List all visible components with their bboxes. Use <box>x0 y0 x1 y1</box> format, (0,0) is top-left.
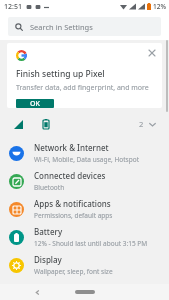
staticText: Battery <box>34 226 63 237</box>
button[interactable]: Battery <box>38 116 54 132</box>
button[interactable]: Home <box>70 286 100 298</box>
staticText: Bluetooth <box>34 183 65 192</box>
staticText: Display <box>34 254 62 265</box>
staticText: Finish setting up Pixel <box>16 68 105 80</box>
staticText: Transfer data, add fingerprint, and more <box>16 83 149 93</box>
staticText: OK <box>30 99 40 108</box>
button[interactable]: 2 <box>136 117 159 131</box>
staticText: Wi-Fi, Mobile, Data usage, Hotspot <box>34 155 140 164</box>
staticText: 12:51 <box>4 2 22 12</box>
staticText: 2 <box>139 119 144 129</box>
button[interactable]: Display <box>0 251 169 279</box>
staticText: Apps & notifications <box>34 198 111 209</box>
button[interactable]: Search in Settings <box>8 17 161 36</box>
staticText: 12% - Should last until about 3:15 PM <box>34 239 148 248</box>
staticText: Search in Settings <box>30 22 93 32</box>
button[interactable]: Back <box>30 285 44 299</box>
staticText: Network & Internet <box>34 142 109 153</box>
staticText: Permissions, default apps <box>34 211 113 220</box>
button[interactable]: Dismiss <box>146 47 158 59</box>
staticText: 12% <box>153 2 166 11</box>
button[interactable]: Battery <box>0 223 169 251</box>
button[interactable]: Network & Internet <box>0 139 169 167</box>
button[interactable]: OK <box>16 99 54 108</box>
button[interactable]: Connected devices <box>0 167 169 195</box>
button[interactable]: Apps & notifications <box>0 195 169 223</box>
button[interactable]: Data usage <box>10 116 26 132</box>
staticText: Wallpaper, sleep, font size <box>34 267 113 276</box>
staticText: Connected devices <box>34 170 106 181</box>
